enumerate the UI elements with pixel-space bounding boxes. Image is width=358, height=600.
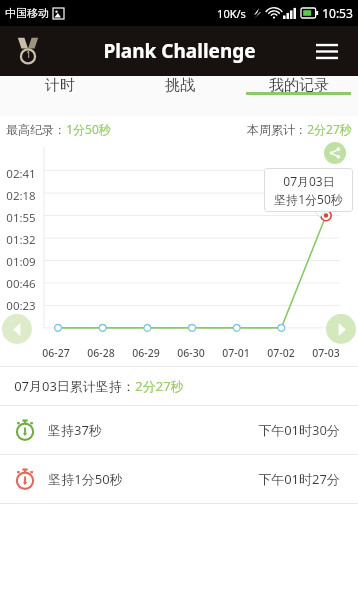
staticText: 06-27 [42, 346, 70, 360]
staticText: 02:18 [6, 188, 36, 204]
staticText: Plank Challenge [103, 38, 256, 64]
staticText: 06-28 [87, 346, 115, 360]
button[interactable]: Share [324, 142, 346, 164]
button[interactable]: Previous week [2, 314, 32, 344]
staticText: 2分27秒 [307, 121, 352, 137]
staticText: 10:53 [322, 5, 353, 21]
staticText: 07-03 [312, 346, 340, 360]
staticText: 坚持1分50秒 [274, 191, 343, 207]
button[interactable]: Medal level 1 [10, 33, 46, 69]
staticText: 00:23 [6, 298, 36, 314]
staticText: 06-30 [177, 346, 205, 360]
staticText: 07月03日 [283, 173, 335, 189]
staticText: 1 [26, 49, 31, 60]
staticText: 07-02 [267, 346, 295, 360]
button[interactable]: 坚持1分50秒 [0, 455, 358, 503]
staticText: 下午01时27分 [258, 470, 340, 488]
staticText: 下午01时30分 [258, 421, 340, 439]
staticText: ： [122, 378, 135, 394]
staticText: 最高纪录 [6, 122, 54, 137]
button[interactable]: 挑战 [120, 76, 239, 95]
staticText: ： [295, 122, 307, 137]
staticText: 07-01 [222, 346, 250, 360]
staticText: 2分27秒 [135, 377, 184, 395]
button[interactable]: Next week [326, 314, 356, 344]
staticText: 00:46 [6, 276, 36, 292]
button[interactable]: Menu [308, 32, 346, 70]
staticText: 坚持1分50秒 [48, 470, 123, 488]
staticText: 本周累计 [247, 122, 295, 137]
staticText: 02:41 [6, 166, 36, 182]
staticText: ： [54, 122, 66, 137]
staticText: 01:32 [6, 232, 36, 248]
button[interactable]: 我的记录 [239, 76, 358, 95]
button[interactable]: 坚持37秒 [0, 406, 358, 454]
staticText: 坚持37秒 [48, 421, 102, 439]
staticText: 挑战 [165, 76, 195, 95]
staticText: 10K/s [217, 6, 246, 21]
button[interactable]: 计时 [0, 76, 120, 95]
staticText: 06-29 [132, 346, 160, 360]
staticText: 中国移动 [5, 6, 49, 20]
staticText: 01:09 [6, 254, 36, 270]
staticText: 我的记录 [269, 76, 329, 95]
staticText: 计时 [45, 76, 75, 95]
staticText: 01:55 [6, 210, 36, 226]
staticText: 1分50秒 [66, 121, 111, 137]
staticText: 07月03日累计坚持 [14, 377, 122, 395]
